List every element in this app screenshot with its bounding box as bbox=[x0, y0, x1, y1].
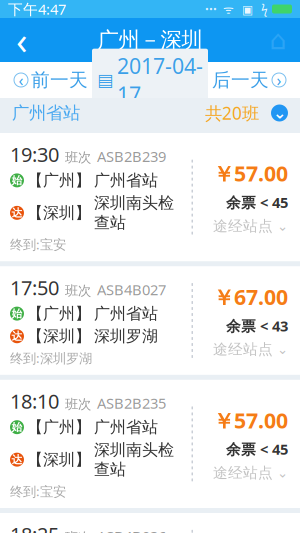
button[interactable]: Back bbox=[0, 18, 44, 62]
staticText: 共20班 bbox=[205, 101, 259, 124]
staticText: 【广州】 bbox=[27, 417, 91, 437]
staticText: 【深圳】 bbox=[27, 450, 91, 469]
staticText: ‹ bbox=[16, 15, 28, 65]
staticText: 始 bbox=[11, 174, 22, 187]
staticText: ￥57.00 bbox=[213, 406, 288, 434]
button[interactable]: 后一天 bbox=[208, 62, 290, 97]
staticText: 前一天 bbox=[31, 68, 88, 91]
staticText: ··· bbox=[205, 0, 217, 18]
staticText: 途经站点 bbox=[213, 217, 273, 235]
staticText: 深圳罗湖 bbox=[94, 326, 158, 346]
staticText: 达 bbox=[11, 330, 22, 343]
staticText: 广州省站 bbox=[94, 171, 158, 190]
staticText: ASB2B235 bbox=[97, 393, 166, 413]
staticText: ‹ bbox=[18, 69, 23, 91]
staticText: 广州省站 bbox=[12, 102, 80, 124]
staticText: 始 bbox=[11, 307, 22, 320]
staticText: 深圳南头检查站 bbox=[94, 440, 174, 479]
staticText: 2017-04-17 bbox=[117, 52, 203, 108]
staticText: ASB2B239 bbox=[97, 147, 166, 166]
staticText: 终到:宝安 bbox=[10, 482, 66, 500]
staticText: 广州省站 bbox=[94, 304, 158, 323]
staticText: ⌄ bbox=[277, 342, 288, 357]
staticText: ￥57.00 bbox=[213, 159, 288, 187]
staticText: 【广州】 bbox=[27, 171, 91, 190]
staticText: 始 bbox=[11, 421, 22, 434]
staticText: ᯤ ▣ ϟ bbox=[217, 1, 268, 17]
button[interactable]: Home bbox=[256, 18, 300, 62]
button[interactable]: 18:25 bbox=[0, 513, 300, 533]
staticText: 18:10 bbox=[10, 388, 59, 414]
staticText: ⌄ bbox=[277, 218, 288, 234]
staticText: ⌂ bbox=[269, 25, 286, 55]
staticText: ASB4B027 bbox=[97, 280, 166, 299]
staticText: ASB4B036 bbox=[97, 527, 166, 533]
staticText: 【深圳】 bbox=[27, 203, 91, 223]
staticText: 广州－深圳 bbox=[97, 27, 202, 53]
staticText: 达 bbox=[11, 453, 22, 466]
button[interactable]: ‹ bbox=[10, 62, 92, 97]
staticText: 余票 < 45 bbox=[226, 193, 288, 212]
staticText: 达 bbox=[11, 206, 22, 219]
staticText: › bbox=[276, 69, 281, 91]
staticText: ￥67.00 bbox=[213, 282, 288, 311]
staticText: 余票 < 45 bbox=[226, 439, 288, 459]
staticText: 19:30 bbox=[10, 141, 59, 168]
staticText: 深圳南头检查站 bbox=[94, 193, 174, 232]
staticText: 18:25 bbox=[10, 521, 59, 533]
staticText: ⌄ bbox=[273, 104, 286, 122]
button[interactable]: ▤ bbox=[92, 49, 208, 111]
staticText: 下午4:47 bbox=[8, 0, 66, 19]
button[interactable]: 18:10 bbox=[0, 380, 300, 508]
staticText: 班次 bbox=[65, 149, 91, 166]
staticText: 17:50 bbox=[10, 274, 59, 301]
staticText: 班次 bbox=[65, 283, 91, 299]
staticText: 途经站点 bbox=[213, 340, 273, 358]
staticText: 广州省站 bbox=[94, 417, 158, 437]
staticText: 终到:宝安 bbox=[10, 235, 66, 253]
staticText: 【深圳】 bbox=[27, 326, 91, 346]
staticText: 后一天 bbox=[212, 68, 269, 91]
staticText: 终到:深圳罗湖 bbox=[10, 349, 92, 367]
staticText: ▤ bbox=[97, 70, 113, 90]
staticText: 余票 < 43 bbox=[226, 316, 288, 335]
button[interactable]: 广州省站 bbox=[0, 98, 300, 128]
staticText: 班次 bbox=[65, 396, 91, 413]
staticText: 途经站点 bbox=[213, 464, 273, 482]
button[interactable]: 17:50 bbox=[0, 266, 300, 375]
staticText: 班次 bbox=[65, 529, 91, 533]
button[interactable]: 19:30 bbox=[0, 133, 300, 261]
staticText: 【广州】 bbox=[27, 304, 91, 323]
staticText: ⌄ bbox=[277, 465, 288, 480]
